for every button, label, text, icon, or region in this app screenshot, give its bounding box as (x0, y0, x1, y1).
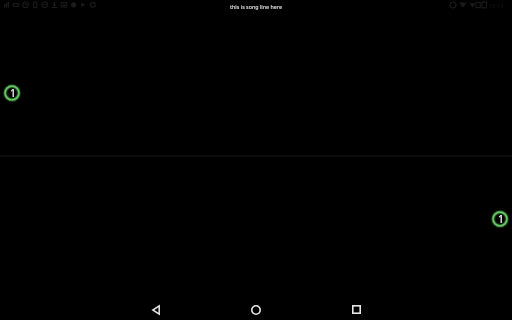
staticText: 1 (498, 212, 505, 226)
staticText: 10:14 (489, 2, 504, 10)
button[interactable]: Recent apps (334, 299, 378, 320)
staticText: 1 (10, 86, 17, 100)
button[interactable]: Back (134, 299, 178, 320)
staticText: this is song line here (230, 3, 283, 10)
button[interactable]: Home (234, 299, 278, 320)
button[interactable]: Marker 1 (492, 211, 508, 227)
button[interactable]: Marker 1 (4, 85, 20, 101)
